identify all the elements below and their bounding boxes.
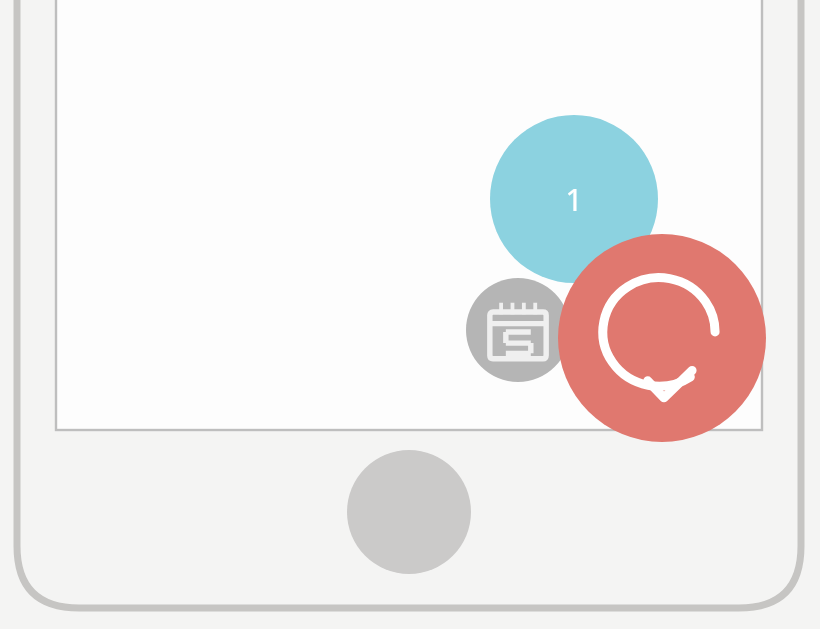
button[interactable]: 1 xyxy=(490,115,658,283)
staticText: 1 xyxy=(565,178,583,220)
button[interactable]: Calendar xyxy=(466,278,570,382)
button[interactable]: New message xyxy=(558,234,766,442)
